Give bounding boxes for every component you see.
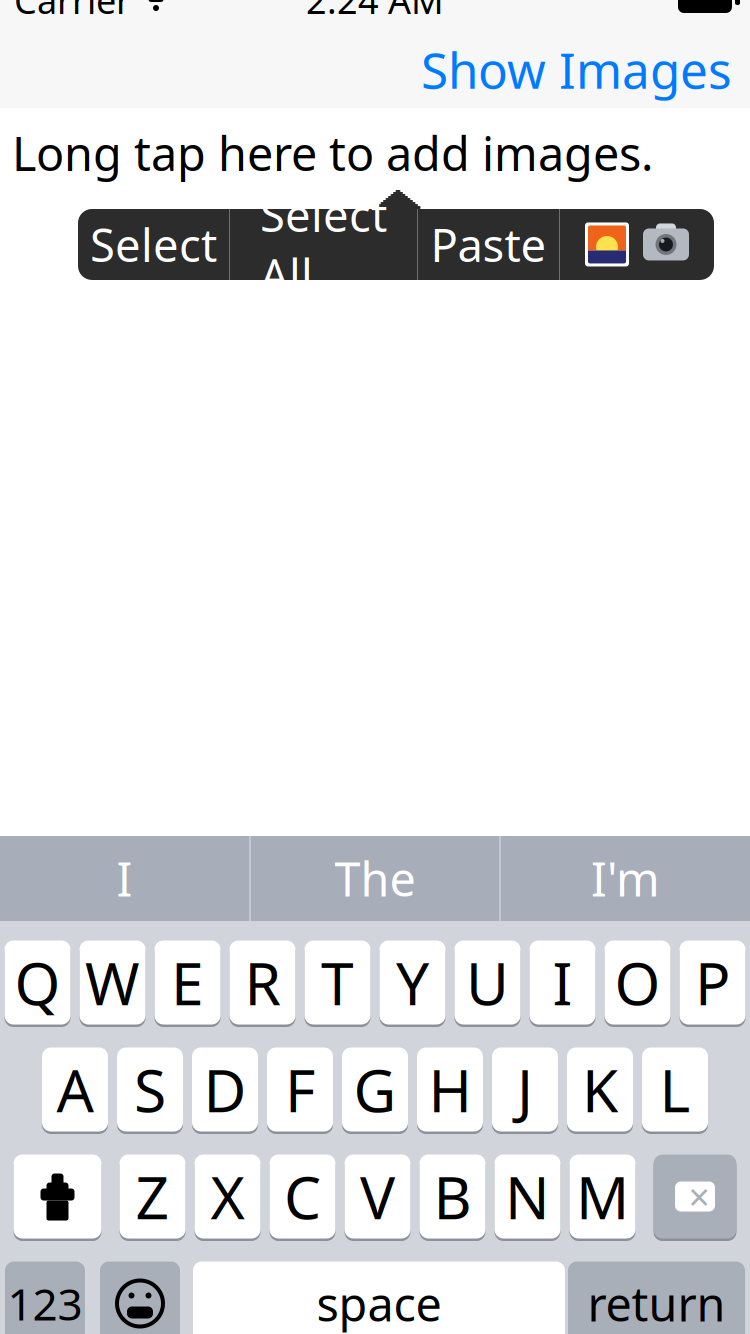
staticText: D [203, 1050, 246, 1128]
staticText: Select [90, 214, 217, 275]
button[interactable]: Z [119, 1152, 185, 1241]
button[interactable]: The [251, 836, 499, 921]
staticText: return [587, 1272, 725, 1334]
staticText: space [316, 1272, 441, 1334]
button[interactable]: G [342, 1045, 408, 1134]
staticText: I [552, 943, 572, 1021]
button[interactable]: Select All [230, 209, 417, 280]
staticText: Y [396, 943, 429, 1021]
button[interactable]: E [154, 938, 220, 1027]
button[interactable]: U [454, 938, 520, 1027]
staticText: V [360, 1157, 395, 1235]
staticText: H [428, 1050, 471, 1128]
staticText: X [210, 1157, 244, 1235]
staticText: A [56, 1050, 93, 1128]
staticText: Paste [430, 214, 546, 275]
staticText: L [659, 1050, 690, 1128]
button[interactable]: I'm [501, 836, 750, 921]
button[interactable]: Select [78, 209, 229, 280]
staticText: The [334, 847, 415, 909]
button[interactable]: V [344, 1152, 410, 1241]
button[interactable]: M [569, 1152, 635, 1241]
staticText: U [466, 943, 509, 1021]
button[interactable]: Shift [13, 1152, 101, 1241]
button[interactable]: 123 [5, 1259, 85, 1334]
button[interactable]: D [192, 1045, 258, 1134]
button[interactable]: I [0, 836, 249, 921]
button[interactable]: I [529, 938, 595, 1027]
staticText: E [171, 943, 204, 1021]
staticText: × [688, 1172, 709, 1221]
staticText: Carrier [14, 0, 131, 24]
button[interactable]: P [679, 938, 745, 1027]
button[interactable]: K [567, 1045, 633, 1134]
button[interactable]: C [269, 1152, 335, 1241]
staticText: 2:24 AM [306, 0, 444, 24]
staticText: W [85, 943, 140, 1021]
staticText: R [244, 943, 280, 1021]
button[interactable]: Delete [653, 1152, 736, 1241]
staticText: Show Images [421, 37, 732, 102]
staticText: 123 [7, 1274, 82, 1333]
button[interactable]: L [642, 1045, 708, 1134]
button[interactable]: Q [4, 938, 70, 1027]
staticText: N [505, 1157, 550, 1235]
staticText: S [134, 1050, 166, 1128]
button[interactable]: Insert photo or take picture [560, 209, 714, 280]
button[interactable]: A [42, 1045, 108, 1134]
button[interactable]: Paste [418, 209, 559, 280]
staticText: M [576, 1157, 629, 1235]
button[interactable]: F [267, 1045, 333, 1134]
staticText: J [517, 1050, 533, 1128]
staticText: Z [135, 1157, 169, 1235]
button[interactable]: W [79, 938, 145, 1027]
button[interactable]: T [304, 938, 370, 1027]
staticText: Long tap here to add images. [12, 122, 654, 184]
button[interactable]: J [492, 1045, 558, 1134]
staticText: I [116, 847, 132, 909]
button[interactable]: Y [379, 938, 445, 1027]
button[interactable]: space [193, 1259, 565, 1334]
button[interactable]: N [494, 1152, 560, 1241]
staticText: Q [14, 943, 60, 1021]
staticText: O [614, 943, 660, 1021]
button[interactable]: return [568, 1259, 745, 1334]
button[interactable]: S [117, 1045, 183, 1134]
button[interactable]: R [229, 938, 295, 1027]
button[interactable]: B [419, 1152, 485, 1241]
staticText: Select All [260, 184, 387, 305]
staticText: F [285, 1050, 315, 1128]
staticText: C [284, 1157, 321, 1235]
staticText: K [582, 1050, 618, 1128]
staticText: P [695, 943, 730, 1021]
button[interactable]: H [417, 1045, 483, 1134]
staticText: G [353, 1050, 396, 1128]
button[interactable]: O [604, 938, 670, 1027]
staticText: T [321, 943, 354, 1021]
staticText: I'm [591, 847, 660, 909]
button[interactable]: Emoji keyboard [100, 1259, 180, 1334]
button[interactable]: Show Images [411, 27, 742, 112]
staticText: B [433, 1157, 471, 1235]
button[interactable]: X [194, 1152, 260, 1241]
